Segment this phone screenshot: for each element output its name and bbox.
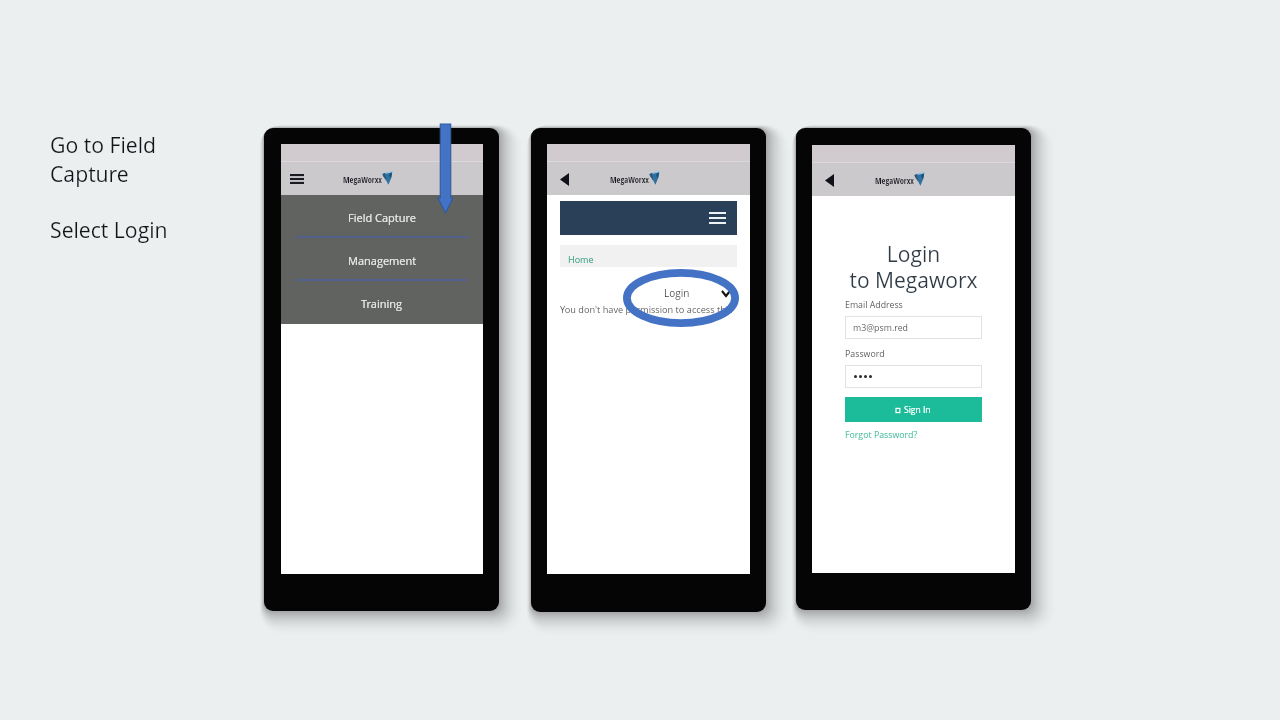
button[interactable]: Open menu [707,208,727,228]
staticText: Field Capture [348,210,416,225]
button[interactable]: Sign In [845,397,982,422]
staticText: Select Login [50,215,168,244]
staticText: MegaWorxx [610,174,649,185]
staticText: Home [568,253,594,265]
staticText: Go to Field Capture [50,130,157,188]
button[interactable]: Back [819,170,839,190]
button[interactable]: Management [281,238,483,279]
staticText: m3@psm.red [853,322,908,334]
staticText: Sign In [904,404,931,416]
staticText: Management [348,253,417,268]
staticText: MegaWorxx [875,175,914,186]
staticText: Password [845,348,885,360]
staticText: Login [664,286,690,300]
button[interactable]: m3@psm.red [845,316,982,339]
staticText: Forgot Password? [845,429,918,441]
button[interactable]: Login [547,285,750,301]
button[interactable]: Open navigation menu [287,169,307,189]
button[interactable]: Back [554,169,574,189]
button[interactable]: Training [281,281,483,322]
staticText: Training [361,296,403,311]
button[interactable]: Forgot Password? [845,429,918,441]
staticText: Email Address [845,299,903,311]
button[interactable] [845,365,982,388]
staticText: Login to Megaworx [812,240,1015,295]
staticText: You don't have permission to access this… [560,303,750,316]
button[interactable]: Field Capture [281,195,483,236]
staticText: MegaWorxx [343,174,382,185]
